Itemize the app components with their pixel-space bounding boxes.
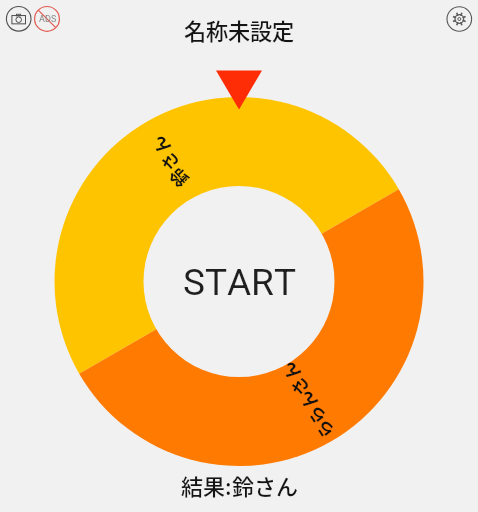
button[interactable]: START <box>144 186 335 377</box>
button[interactable]: Take screenshot <box>2 2 36 36</box>
button[interactable]: Remove ads <box>30 2 64 36</box>
button[interactable]: Settings <box>442 2 476 36</box>
